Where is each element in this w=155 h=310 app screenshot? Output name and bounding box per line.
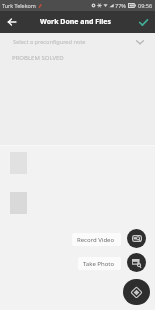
staticText: Turk Telekom — [2, 2, 36, 9]
button[interactable]: Record Video — [72, 233, 121, 246]
staticText: 09:56 — [138, 2, 153, 9]
staticText: Take Photo — [83, 260, 115, 268]
staticText: Record Video — [77, 236, 115, 244]
button[interactable]: Take Photo — [78, 257, 121, 270]
button[interactable]: Back — [0, 11, 24, 33]
button[interactable]: Select a preconfigured note — [0, 33, 155, 50]
button[interactable]: Record Video — [127, 229, 146, 248]
button[interactable]: Close attachment menu — [123, 279, 150, 305]
staticText: 77% — [115, 2, 126, 9]
staticText: Work Done and Files — [40, 17, 112, 27]
button[interactable]: Done — [131, 11, 155, 33]
staticText: PROBLEM SOLVED — [12, 54, 64, 62]
staticText: Select a preconfigured note — [13, 38, 86, 46]
button[interactable]: Take Photo — [127, 253, 146, 272]
